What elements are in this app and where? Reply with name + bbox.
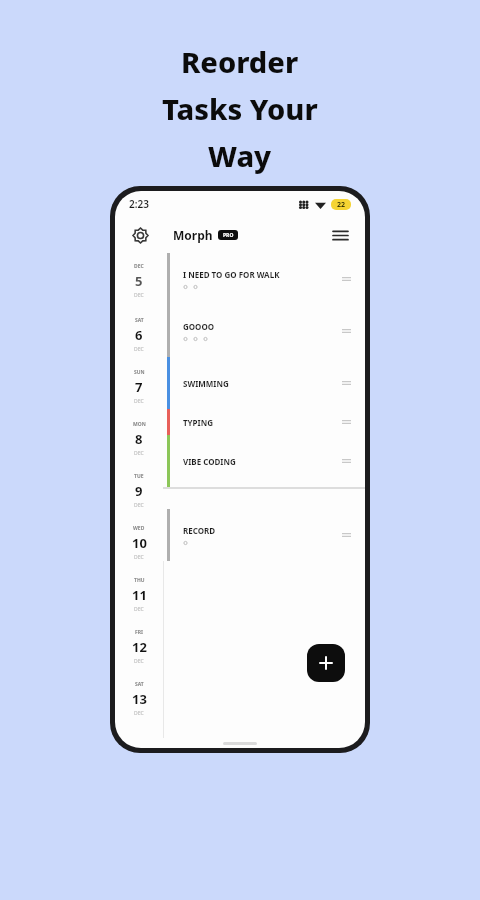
staticText: RECORD: [183, 525, 216, 536]
button[interactable]: GOOOO: [173, 305, 365, 357]
staticText: SWIMMING: [183, 378, 229, 389]
staticText: TUE: [134, 473, 144, 480]
staticText: FRI: [135, 629, 143, 636]
button[interactable]: Reorder: [339, 528, 353, 542]
staticText: Reorder: [181, 42, 299, 81]
button[interactable]: SUN: [115, 361, 163, 413]
staticText: DEC: [134, 292, 144, 299]
staticText: Way: [208, 136, 272, 175]
button[interactable]: Reorder: [339, 454, 353, 468]
button[interactable]: WED: [115, 517, 163, 569]
staticText: SUN: [134, 369, 145, 376]
button[interactable]: Reorder: [339, 324, 353, 338]
staticText: 9: [135, 482, 143, 500]
staticText: PRO: [223, 232, 234, 239]
staticText: SAT: [135, 317, 144, 324]
staticText: DEC: [134, 346, 144, 353]
staticText: DEC: [134, 554, 144, 561]
staticText: 5: [135, 272, 143, 290]
button[interactable]: Menu: [329, 224, 351, 246]
button[interactable]: SAT: [115, 309, 163, 361]
staticText: Tasks Your: [162, 89, 318, 128]
staticText: 10: [132, 534, 147, 552]
button[interactable]: Reorder: [339, 272, 353, 286]
staticText: 22: [337, 200, 346, 210]
staticText: VIBE CODING: [183, 456, 236, 467]
staticText: 12: [132, 638, 147, 656]
button[interactable]: I NEED TO GO FOR WALK: [173, 253, 365, 305]
button[interactable]: Reorder: [339, 376, 353, 390]
staticText: DEC: [134, 658, 144, 665]
staticText: MON: [133, 421, 146, 428]
staticText: DEC: [134, 450, 144, 457]
button[interactable]: TYPING: [173, 409, 365, 435]
button[interactable]: Settings: [129, 224, 151, 246]
button[interactable]: FRI: [115, 621, 163, 673]
staticText: DEC: [134, 606, 144, 613]
button[interactable]: RECORD: [173, 509, 365, 561]
button[interactable]: SAT: [115, 673, 163, 725]
button[interactable]: DEC: [115, 253, 163, 309]
button[interactable]: Reorder: [339, 415, 353, 429]
staticText: 7: [135, 378, 143, 396]
staticText: TYPING: [183, 417, 213, 428]
staticText: 8: [135, 430, 143, 448]
staticText: SAT: [135, 681, 144, 688]
staticText: DEC: [134, 502, 144, 509]
button[interactable]: THU: [115, 569, 163, 621]
button[interactable]: VIBE CODING: [173, 435, 365, 487]
staticText: 2:23: [129, 197, 149, 211]
staticText: 11: [132, 586, 147, 604]
button[interactable]: Add task: [307, 644, 345, 682]
staticText: WED: [133, 525, 145, 532]
staticText: DEC: [134, 398, 144, 405]
button[interactable]: MON: [115, 413, 163, 465]
staticText: DEC: [134, 263, 144, 270]
button[interactable]: TUE: [115, 465, 163, 517]
staticText: THU: [134, 577, 145, 584]
staticText: GOOOO: [183, 321, 215, 332]
button[interactable]: SWIMMING: [173, 357, 365, 409]
staticText: Morph: [173, 227, 213, 243]
staticText: 6: [135, 326, 143, 344]
staticText: I NEED TO GO FOR WALK: [183, 269, 280, 280]
staticText: DEC: [134, 710, 144, 717]
staticText: 13: [132, 690, 147, 708]
